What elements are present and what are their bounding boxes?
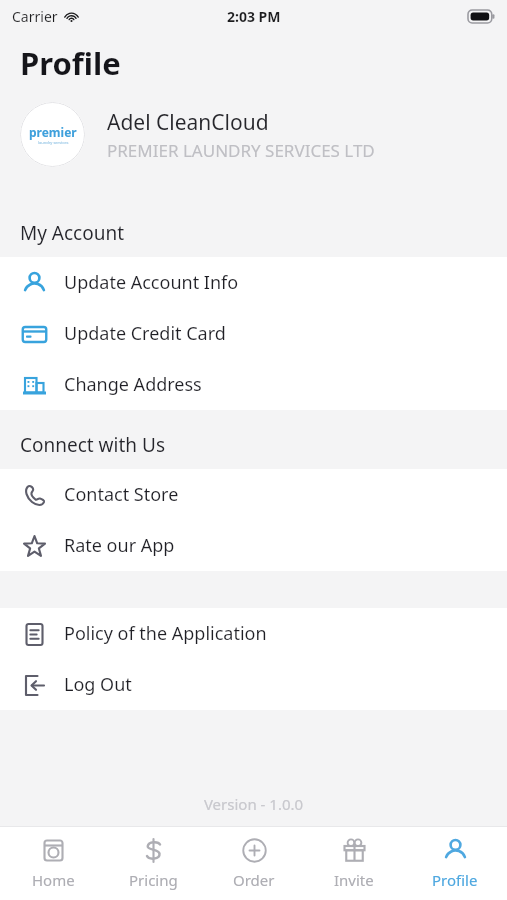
staticText: Update Credit Card xyxy=(64,321,226,346)
staticText: Profile xyxy=(432,870,478,890)
button[interactable]: Profile xyxy=(407,832,503,896)
button[interactable]: Change Address xyxy=(0,359,507,410)
staticText: Invite xyxy=(334,870,374,890)
staticText: My Account xyxy=(20,220,125,246)
staticText: Log Out xyxy=(64,672,132,697)
button[interactable]: Home xyxy=(5,832,101,896)
staticText: Change Address xyxy=(64,372,202,397)
button[interactable]: Policy of the Application xyxy=(0,608,507,659)
staticText: Contact Store xyxy=(64,482,179,507)
staticText: Version - 1.0.0 xyxy=(0,794,507,814)
staticText: premier xyxy=(29,124,77,140)
staticText: Update Account Info xyxy=(64,270,239,295)
staticText: Home xyxy=(32,870,75,890)
staticText: Pricing xyxy=(129,870,178,890)
staticText: Carrier xyxy=(12,7,58,26)
staticText: Policy of the Application xyxy=(64,621,267,646)
button[interactable]: Update Credit Card xyxy=(0,308,507,359)
button[interactable]: premier xyxy=(0,94,507,175)
button[interactable]: Order xyxy=(206,832,302,896)
staticText: Profile xyxy=(20,42,121,84)
staticText: PREMIER LAUNDRY SERVICES LTD xyxy=(107,139,375,162)
staticText: 2:03 PM xyxy=(227,7,281,26)
staticText: Order xyxy=(233,870,275,890)
staticText: Rate our App xyxy=(64,533,175,558)
staticText: Adel CleanCloud xyxy=(107,108,269,137)
button[interactable]: Pricing xyxy=(105,832,201,896)
button[interactable]: Update Account Info xyxy=(0,257,507,308)
button[interactable]: Log Out xyxy=(0,659,507,710)
button[interactable]: Invite xyxy=(306,832,402,896)
staticText: Connect with Us xyxy=(20,432,165,458)
staticText: laundry services xyxy=(38,140,69,145)
button[interactable]: Contact Store xyxy=(0,469,507,520)
button[interactable]: Rate our App xyxy=(0,520,507,571)
